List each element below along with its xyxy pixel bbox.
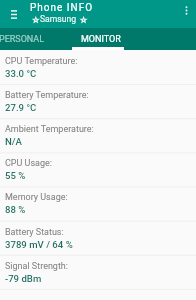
- button[interactable]: More options: [176, 0, 196, 20]
- button[interactable]: Ambient Temperature:: [0, 118, 196, 152]
- button[interactable]: MONITOR: [75, 28, 127, 50]
- staticText: Battery Status:: [5, 227, 64, 238]
- button[interactable]: Signal Strength:: [0, 255, 196, 289]
- button[interactable]: Battery Temperature:: [0, 84, 196, 118]
- button[interactable]: CPU Temperature:: [0, 50, 196, 84]
- button[interactable]: PERSONAL: [0, 28, 73, 50]
- staticText: CPU Temperature:: [5, 56, 78, 67]
- staticText: -79 dBm: [5, 273, 42, 284]
- staticText: N/A: [5, 136, 22, 147]
- staticText: Signal Strength:: [5, 261, 69, 272]
- staticText: Battery Temperature:: [5, 90, 89, 101]
- staticText: 3789 mV / 64 %: [5, 239, 73, 250]
- button[interactable]: Battery Status:: [0, 221, 196, 255]
- staticText: PERSONAL: [0, 34, 45, 45]
- staticText: Ambient Temperature:: [5, 124, 94, 135]
- staticText: Memory Usage:: [5, 192, 68, 203]
- staticText: MONITOR: [81, 34, 121, 45]
- staticText: Samsung: [40, 14, 77, 24]
- staticText: CPU Usage:: [5, 158, 52, 169]
- button[interactable]: CPU Usage:: [0, 152, 196, 186]
- button[interactable]: Open navigation drawer: [0, 0, 28, 28]
- staticText: Phone INFO: [30, 2, 94, 14]
- staticText: 33.0 °C: [5, 68, 37, 79]
- staticText: 88 %: [5, 204, 26, 215]
- staticText: 27.9 °C: [5, 102, 37, 113]
- button[interactable]: Memory Usage:: [0, 186, 196, 220]
- staticText: 55 %: [5, 170, 26, 181]
